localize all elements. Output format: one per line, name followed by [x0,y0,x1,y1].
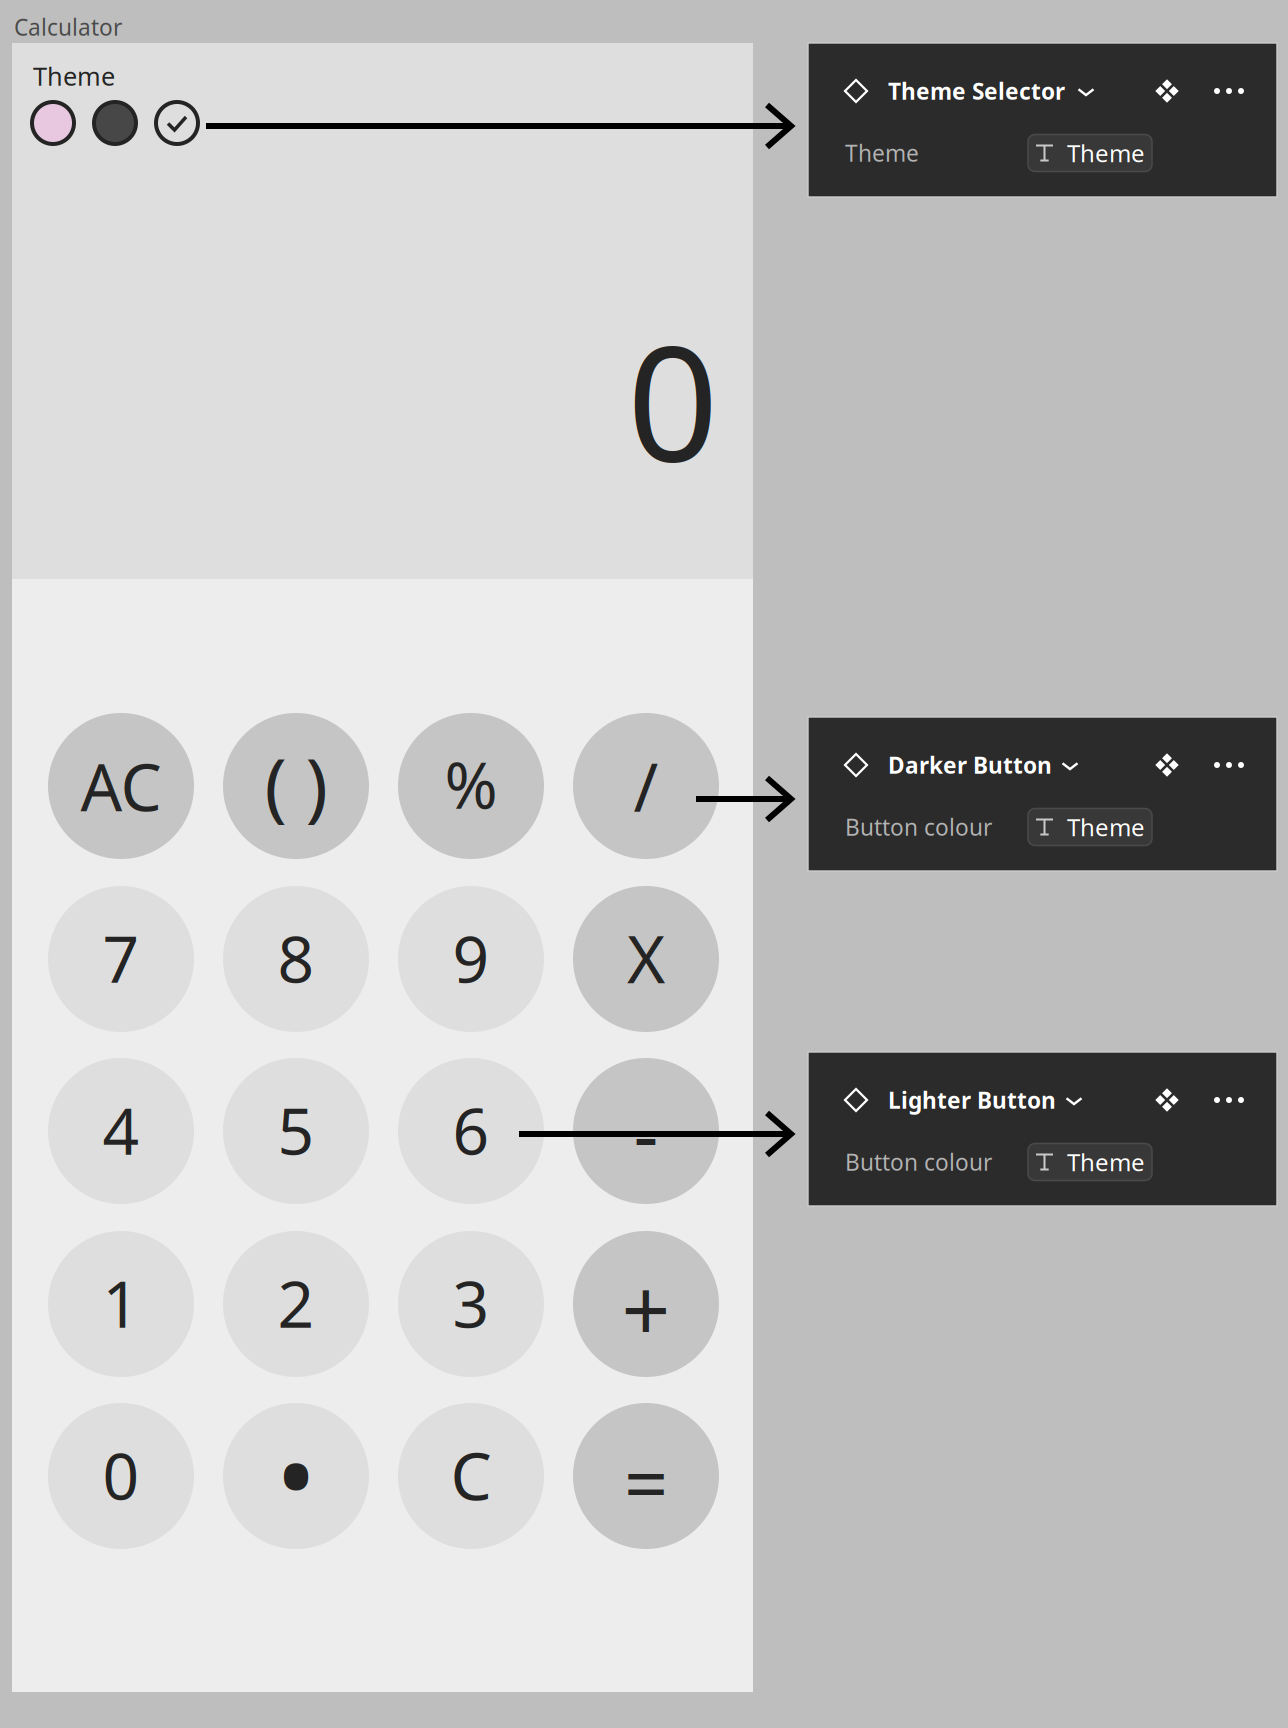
button[interactable]: • [223,1403,369,1549]
staticText: • [275,1401,316,1547]
button[interactable]: 3 [398,1231,544,1377]
button[interactable]: + [573,1231,719,1377]
button[interactable]: Component [844,1088,868,1112]
button[interactable]: AC [48,713,194,859]
staticText: Theme [1067,811,1145,843]
button[interactable]: Theme [1028,134,1152,171]
button[interactable]: Expand layer [1065,1092,1082,1109]
staticText: 7 [102,915,139,1000]
staticText: C [450,1432,491,1518]
staticText: X [627,915,665,1001]
staticText: = [624,1431,668,1533]
staticText: Darker Button [888,750,1052,780]
button[interactable]: - [573,1058,719,1204]
staticText: ( ) [264,734,327,834]
staticText: - [633,1082,658,1184]
button[interactable]: 2 [223,1231,369,1377]
button[interactable]: % [398,713,544,859]
staticText: AC [80,743,161,829]
staticText: / [633,742,658,830]
staticText: Theme [1067,137,1145,169]
staticText: 8 [277,915,314,1000]
staticText: Theme Selector [888,76,1065,106]
button[interactable]: Component [844,79,868,103]
staticText: % [444,741,497,826]
button[interactable]: Expand layer [1077,83,1094,100]
staticText: + [621,1252,670,1366]
button[interactable]: More options [1207,80,1251,102]
button[interactable]: = [573,1403,719,1549]
staticText: Theme [33,59,115,93]
button[interactable]: X [573,886,719,1032]
button[interactable]: ( ) [223,713,369,859]
button[interactable]: 4 [48,1058,194,1204]
button[interactable]: Variants [1154,1087,1180,1113]
button[interactable]: 9 [398,886,544,1032]
button[interactable]: Dark theme [94,102,136,144]
staticText: Theme [845,138,919,168]
staticText: Lighter Button [888,1085,1056,1115]
button[interactable]: 7 [48,886,194,1032]
button[interactable]: 8 [223,886,369,1032]
staticText: Button colour [845,812,992,842]
button[interactable]: Theme [1028,808,1152,845]
staticText: 0 [627,293,719,505]
button[interactable]: More options [1207,1089,1251,1111]
button[interactable]: Expand layer [1061,757,1078,774]
button[interactable]: / [573,713,719,859]
button[interactable]: C [398,1403,544,1549]
button[interactable]: Pink theme [32,102,74,144]
button[interactable]: 5 [223,1058,369,1204]
button[interactable]: Component [844,753,868,777]
button[interactable]: Theme [1028,1143,1152,1180]
staticText: 1 [102,1260,139,1345]
button[interactable]: 0 [48,1403,194,1549]
button[interactable]: 6 [398,1058,544,1204]
button[interactable]: Variants [1154,752,1180,778]
staticText: 4 [102,1087,139,1172]
button[interactable]: 1 [48,1231,194,1377]
staticText: 2 [277,1260,314,1345]
staticText: 3 [452,1260,489,1345]
staticText: 9 [452,915,489,1000]
staticText: 0 [102,1432,139,1517]
staticText: 6 [452,1087,489,1172]
button[interactable]: Light theme, selected [156,102,198,144]
staticText: 5 [277,1087,314,1172]
staticText: Button colour [845,1147,992,1177]
staticText: Theme [1067,1146,1145,1178]
staticText: Calculator [14,12,122,42]
button[interactable]: More options [1207,754,1251,776]
button[interactable]: Variants [1154,78,1180,104]
